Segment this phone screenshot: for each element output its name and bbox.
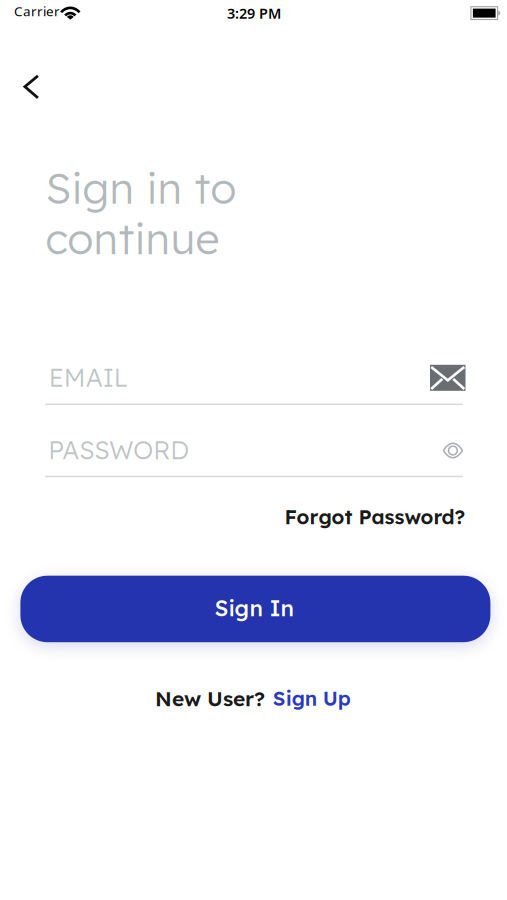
staticText: New User?	[155, 685, 265, 711]
staticText: Sign in to	[45, 161, 236, 214]
button[interactable]: Forgot Password?	[284, 504, 465, 529]
staticText: EMAIL	[49, 361, 128, 393]
staticText: Sign Up	[273, 686, 351, 711]
button[interactable]: Sign In	[20, 576, 490, 642]
staticText: Carrier	[14, 2, 60, 20]
staticText: Forgot Password?	[284, 504, 465, 529]
staticText: PASSWORD	[48, 434, 189, 465]
staticText: Sign In	[214, 594, 293, 622]
button[interactable]: PASSWORD	[45, 432, 463, 477]
staticText: continue	[45, 212, 219, 265]
button[interactable]: Sign Up	[273, 686, 351, 711]
button[interactable]	[9, 64, 53, 108]
staticText: 3:29 PM	[227, 3, 281, 23]
button[interactable]: EMAIL	[45, 360, 463, 405]
